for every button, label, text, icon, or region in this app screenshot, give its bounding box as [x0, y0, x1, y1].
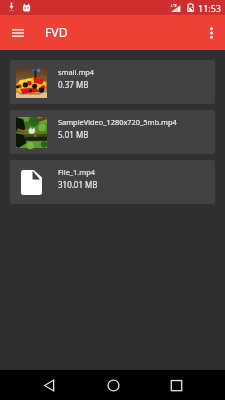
button[interactable]: Back [34, 370, 64, 400]
staticText: small.mp4 [58, 67, 95, 77]
button[interactable]: More options [199, 20, 224, 45]
staticText: 5.01 MB [58, 129, 89, 140]
staticText: 0.37 MB [58, 79, 89, 90]
button[interactable]: Home [98, 370, 128, 400]
staticText: SampleVideo_1280x720_5mb.mp4 [58, 117, 177, 127]
button[interactable]: small.mp4 [10, 60, 215, 104]
button[interactable]: Open navigation drawer [5, 20, 30, 45]
staticText: 310.01 MB [58, 179, 98, 190]
button[interactable]: SampleVideo_1280x720_5mb.mp4 [10, 110, 215, 154]
staticText: 11:53 [198, 2, 222, 14]
button[interactable]: Recent apps [161, 370, 191, 400]
staticText: File_1.mp4 [58, 167, 95, 177]
staticText: FVD [45, 24, 68, 41]
button[interactable]: File_1.mp4 [10, 160, 215, 204]
